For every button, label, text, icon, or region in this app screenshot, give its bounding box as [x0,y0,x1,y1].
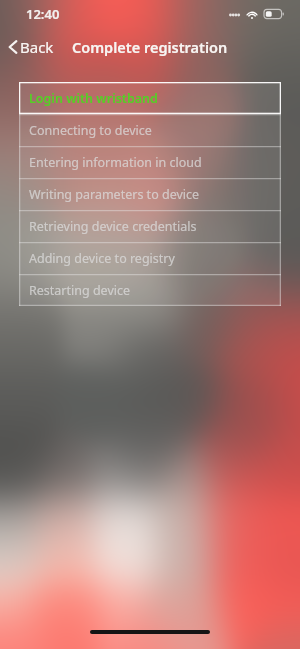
staticText: Restarting device [29,282,131,299]
button[interactable]: Entering information in cloud [19,146,281,178]
button[interactable]: Connecting to device [19,114,281,146]
button[interactable]: Back [0,31,64,63]
staticText: Writing parameters to device [29,186,200,203]
button[interactable]: Adding device to registry [19,242,281,274]
staticText: Entering information in cloud [29,154,202,171]
button[interactable]: Retrieving device credentials [19,210,281,242]
staticText: 12:40 [26,5,60,23]
staticText: Adding device to registry [29,250,175,267]
button[interactable]: Login with wristband [19,82,281,114]
staticText: Retrieving device credentials [29,218,197,235]
staticText: Back [20,37,54,57]
staticText: Complete registration [72,37,228,57]
button[interactable]: Restarting device [19,274,281,306]
staticText: Connecting to device [29,122,152,139]
staticText: Login with wristband [29,90,158,107]
button[interactable]: Writing parameters to device [19,178,281,210]
